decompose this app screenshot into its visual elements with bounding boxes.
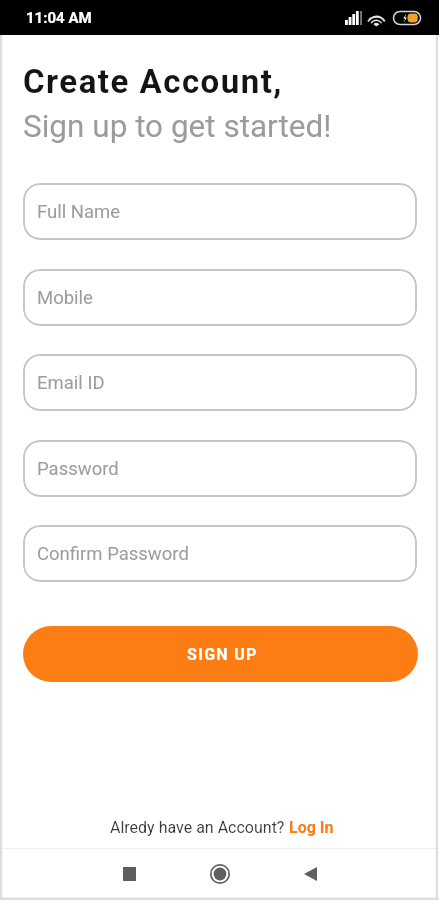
staticText: Mobile — [37, 287, 93, 309]
staticText: Full Name — [37, 201, 121, 223]
staticText: Email ID — [37, 372, 105, 394]
button[interactable]: Recents — [100, 848, 159, 900]
button[interactable]: Back — [281, 848, 340, 900]
button[interactable]: Home — [190, 848, 249, 900]
button[interactable]: Mobile — [23, 269, 417, 326]
button[interactable]: Confirm Password — [23, 525, 417, 582]
button[interactable]: Full Name — [23, 183, 417, 240]
button[interactable]: SIGN UP — [23, 626, 418, 682]
button[interactable]: Password — [23, 440, 417, 497]
staticText: Create Account, — [23, 62, 283, 101]
staticText: Log In — [289, 818, 334, 837]
staticText: Password — [37, 458, 119, 480]
button[interactable]: Email ID — [23, 354, 417, 411]
button[interactable]: Alredy have an Account? — [104, 816, 340, 839]
staticText: SIGN UP — [187, 645, 258, 664]
staticText: 11:04 AM — [26, 9, 92, 27]
staticText: Sign up to get started! — [23, 108, 332, 145]
staticText: Alredy have an Account? — [110, 818, 289, 837]
staticText: Confirm Password — [37, 543, 189, 565]
